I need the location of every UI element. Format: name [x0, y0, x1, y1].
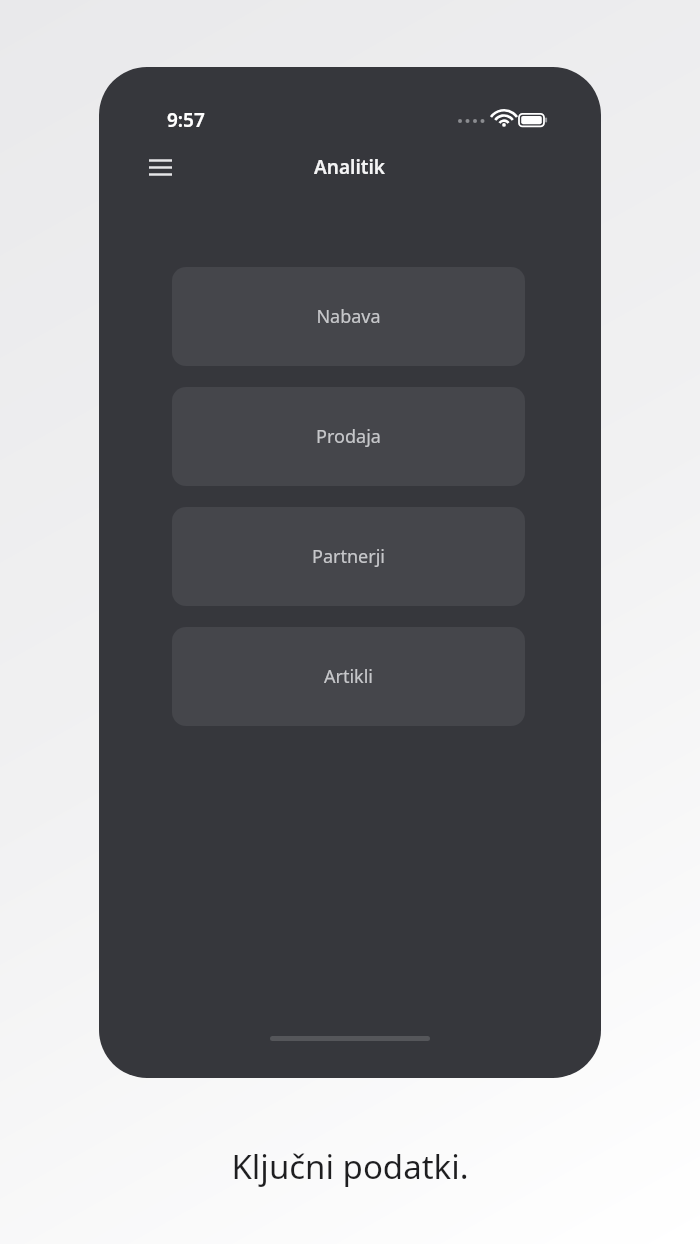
staticText: Nabava [316, 304, 381, 329]
staticText: Prodaja [316, 424, 381, 449]
button[interactable]: Artikli [172, 627, 525, 726]
staticText: Ključni podatki. [231, 1144, 469, 1189]
staticText: Partnerji [312, 544, 385, 569]
button[interactable]: Nabava [172, 267, 525, 366]
staticText: Analitik [314, 154, 386, 180]
button[interactable]: Prodaja [172, 387, 525, 486]
button[interactable]: Partnerji [172, 507, 525, 606]
staticText: Artikli [324, 664, 373, 689]
button[interactable]: Menu [137, 145, 183, 189]
staticText: 9:57 [167, 107, 205, 133]
